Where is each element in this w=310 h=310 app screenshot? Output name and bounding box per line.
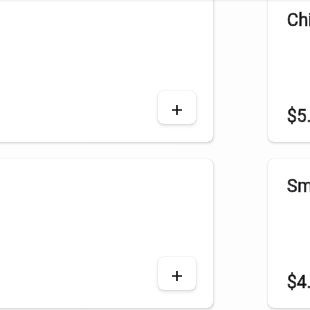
staticText: Chicken Bowl [287, 10, 310, 31]
staticText: Smoothie Mix [287, 176, 310, 197]
button[interactable]: Chicken Bowl [268, 0, 310, 142]
staticText: $4.50 [287, 272, 310, 293]
staticText: Chicken Bowl [287, 10, 310, 31]
staticText: $4.50 [287, 272, 310, 293]
staticText: $5.99 [287, 106, 310, 127]
button[interactable]: Smoothie Mix [268, 159, 310, 308]
button[interactable]: Chicken Bowl [0, 0, 213, 142]
button[interactable]: Add item to cart [158, 91, 196, 124]
staticText: $5.99 [287, 106, 310, 127]
button[interactable]: Smoothie Mix [0, 159, 213, 308]
button[interactable]: Add item to cart [158, 257, 196, 290]
staticText: Smoothie Mix [287, 176, 310, 197]
